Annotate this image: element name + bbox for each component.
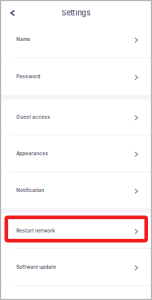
staticText: Restart network: [16, 228, 55, 233]
staticText: Appearances: [16, 151, 48, 156]
staticText: Password: [16, 74, 40, 79]
button[interactable]: Appearances: [0, 135, 152, 172]
button[interactable]: Name: [0, 21, 152, 58]
staticText: Settings: [61, 8, 90, 17]
button[interactable]: Notification: [0, 172, 152, 208]
staticText: Notification: [16, 187, 44, 193]
staticText: Name: [16, 36, 30, 42]
button[interactable]: Software update: [0, 249, 152, 285]
button[interactable]: Restart network: [0, 213, 152, 248]
button[interactable]: Guest access: [0, 99, 152, 135]
button[interactable]: Back: [5, 5, 21, 21]
button[interactable]: Password: [0, 58, 152, 95]
staticText: Software update: [16, 264, 56, 270]
staticText: Guest access: [16, 114, 50, 120]
